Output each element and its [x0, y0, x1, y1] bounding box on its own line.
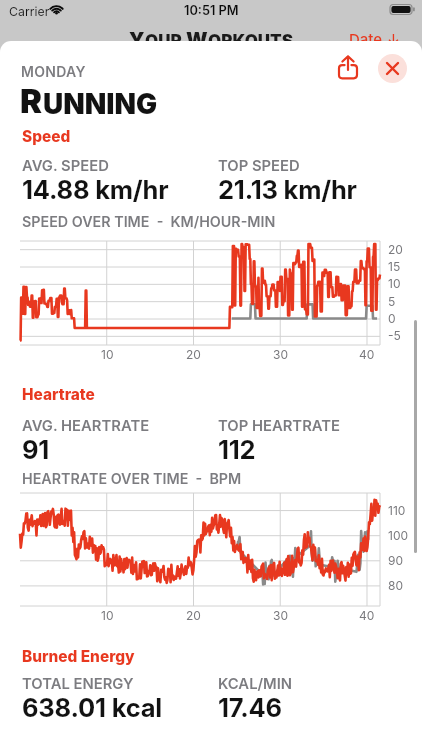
- staticText: KCAL/MIN: [218, 675, 293, 693]
- staticText: Carrier: [9, 4, 50, 19]
- staticText: AVG. SPEED: [22, 157, 109, 175]
- staticText: 80: [388, 578, 403, 593]
- staticText: 91: [22, 434, 50, 465]
- staticText: 14.88 km/hr: [22, 174, 169, 205]
- staticText: Date: [349, 30, 383, 48]
- staticText: 20: [186, 347, 201, 362]
- staticText: 10:51 PM: [184, 3, 239, 18]
- staticText: 15: [388, 259, 401, 274]
- staticText: 10: [101, 608, 114, 623]
- staticText: ↓: [387, 30, 400, 48]
- staticText: 17.46: [218, 692, 282, 723]
- staticText: HEARTRATE OVER TIME - BPM: [22, 470, 242, 487]
- button[interactable]: Close: [378, 54, 407, 83]
- staticText: 10: [388, 276, 401, 291]
- staticText: Speed: [22, 127, 71, 146]
- staticText: 110: [388, 503, 406, 518]
- staticText: TOP SPEED: [218, 157, 300, 175]
- button[interactable]: Share: [331, 50, 365, 84]
- staticText: 40: [359, 347, 375, 362]
- staticText: 100: [388, 528, 409, 543]
- staticText: AVG. HEARTRATE: [22, 417, 150, 435]
- staticText: ORKOUTS: [208, 31, 294, 52]
- staticText: 112: [218, 434, 256, 465]
- staticText: R: [20, 81, 43, 121]
- staticText: TOP HEARTRATE: [218, 417, 340, 435]
- staticText: MONDAY: [21, 63, 86, 80]
- staticText: 40: [359, 608, 375, 623]
- staticText: 10: [101, 347, 114, 362]
- staticText: 30: [273, 347, 288, 362]
- staticText: SPEED OVER TIME - KM/HOUR-MIN: [22, 213, 276, 230]
- staticText: -5: [388, 328, 401, 343]
- staticText: 90: [388, 553, 404, 568]
- staticText: 21.13 km/hr: [218, 174, 357, 205]
- staticText: TOTAL ENERGY: [22, 675, 134, 693]
- staticText: W: [186, 28, 208, 52]
- staticText: 0: [388, 311, 396, 326]
- staticText: 20: [388, 242, 403, 257]
- staticText: 20: [186, 608, 201, 623]
- staticText: Heartrate: [22, 385, 95, 404]
- staticText: Burned Energy: [22, 647, 135, 666]
- staticText: 30: [273, 608, 288, 623]
- staticText: OUR: [145, 31, 186, 52]
- staticText: UNNING: [43, 87, 158, 121]
- staticText: Y: [129, 28, 145, 52]
- staticText: 638.01 kcal: [22, 692, 163, 723]
- staticText: 5: [388, 294, 396, 309]
